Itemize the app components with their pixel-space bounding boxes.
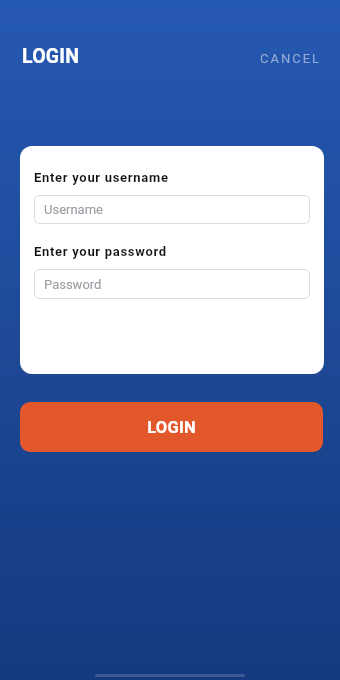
button[interactable]: Username — [34, 195, 310, 224]
staticText: CANCEL — [260, 51, 322, 66]
staticText: LOGIN — [22, 45, 80, 68]
staticText: Password — [44, 277, 102, 292]
staticText: Enter your username — [34, 170, 169, 185]
button[interactable]: Password — [34, 269, 310, 299]
button[interactable]: LOGIN — [20, 402, 323, 452]
staticText: Username — [44, 202, 103, 217]
staticText: Enter your password — [34, 244, 167, 259]
button[interactable]: CANCEL — [260, 51, 322, 66]
staticText: LOGIN — [147, 418, 196, 437]
